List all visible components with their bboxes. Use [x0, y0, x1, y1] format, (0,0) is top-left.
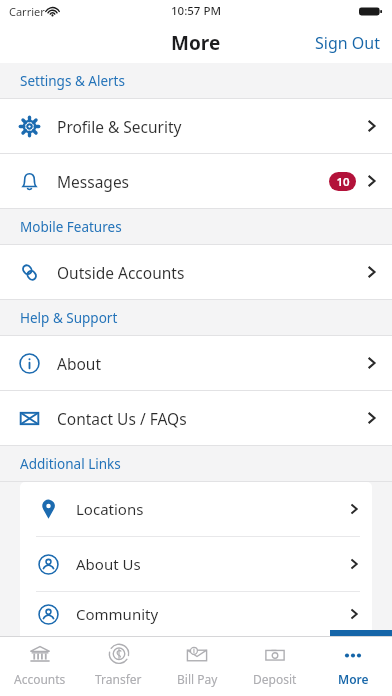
button[interactable]: Deposit: [236, 642, 314, 696]
button[interactable]: Contact Us / FAQs: [0, 391, 392, 446]
button[interactable]: About: [0, 336, 392, 391]
staticText: Locations: [76, 499, 350, 519]
button[interactable]: Sign Out: [303, 24, 392, 62]
button[interactable]: About Us: [20, 537, 372, 591]
staticText: Settings & Alerts: [20, 72, 125, 90]
staticText: Transfer: [95, 671, 142, 687]
button[interactable]: Profile & Security: [0, 99, 392, 154]
staticText: Accounts: [14, 671, 66, 687]
button[interactable]: Outside Accounts: [0, 245, 392, 300]
staticText: Additional Links: [20, 455, 121, 473]
button[interactable]: Community: [20, 592, 372, 636]
button[interactable]: Locations: [20, 482, 372, 536]
staticText: More: [338, 671, 369, 687]
staticText: Deposit: [253, 671, 297, 687]
staticText: Carrier: [9, 4, 45, 19]
button[interactable]: Accounts: [0, 642, 79, 696]
staticText: Profile & Security: [57, 116, 367, 137]
staticText: Sign Out: [315, 32, 380, 54]
staticText: Community: [76, 604, 350, 624]
button[interactable]: Messages: [0, 154, 392, 209]
staticText: Outside Accounts: [57, 262, 367, 283]
staticText: Messages: [57, 171, 329, 192]
other: More: [341, 643, 365, 667]
staticText: 10: [336, 174, 350, 190]
staticText: Mobile Features: [20, 218, 122, 236]
staticText: 10:57 PM: [171, 3, 222, 19]
staticText: More: [171, 30, 221, 56]
staticText: Contact Us / FAQs: [57, 408, 367, 429]
staticText: About: [57, 353, 367, 374]
staticText: Help & Support: [20, 309, 118, 327]
button[interactable]: Bill Pay: [158, 642, 236, 696]
button[interactable]: Transfer: [79, 642, 158, 696]
staticText: Bill Pay: [177, 671, 218, 687]
staticText: About Us: [76, 554, 350, 574]
button[interactable]: More: [314, 642, 392, 696]
